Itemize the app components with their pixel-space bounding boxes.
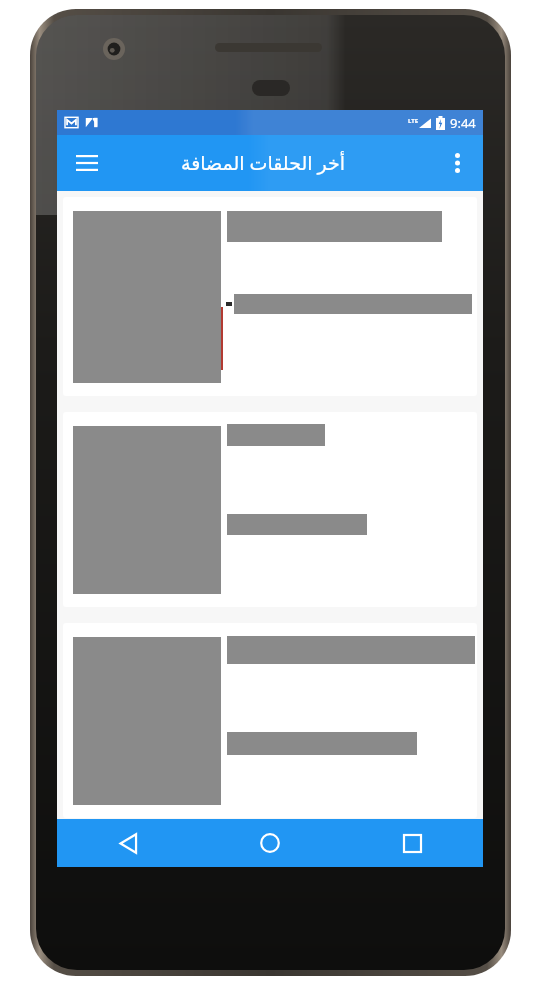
staticText: LTE	[408, 117, 419, 125]
staticText: 9:44	[450, 114, 476, 132]
button[interactable]	[63, 197, 477, 396]
staticText: أخر الحلقات المضافة	[181, 150, 345, 176]
button[interactable]	[63, 412, 477, 607]
button[interactable]: More options	[435, 141, 479, 185]
button[interactable]: Recent apps	[341, 819, 483, 867]
button[interactable]: Open navigation drawer	[65, 141, 109, 185]
button[interactable]: Back	[57, 819, 199, 867]
button[interactable]	[63, 623, 477, 818]
button[interactable]: Home	[199, 819, 341, 867]
